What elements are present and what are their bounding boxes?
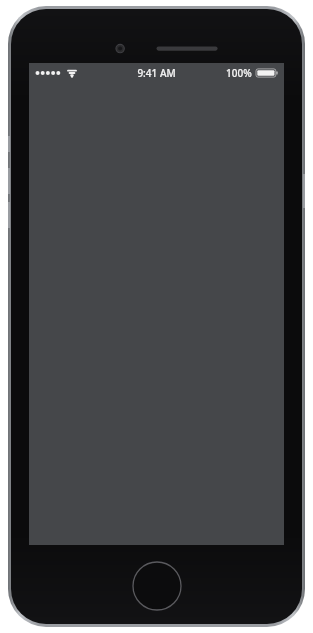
button[interactable]: Home [131, 560, 183, 612]
staticText: 100% [226, 66, 252, 80]
staticText: 9:41 AM [137, 66, 176, 80]
